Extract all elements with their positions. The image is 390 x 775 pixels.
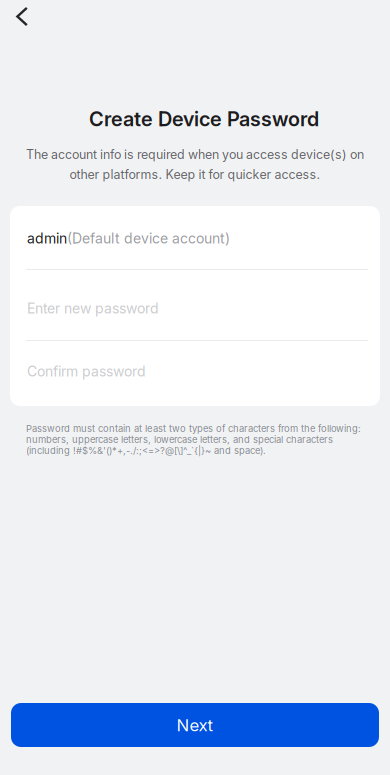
button[interactable]: Enter new password [10, 270, 380, 340]
staticText: Next [176, 715, 213, 735]
staticText: Create Device Password [89, 107, 319, 131]
button[interactable]: Confirm password [10, 341, 380, 406]
button[interactable]: admin [10, 206, 380, 269]
staticText: numbers, uppercase letters, lowercase le… [26, 434, 333, 445]
staticText: Confirm password [27, 363, 146, 380]
staticText: Enter new password [27, 300, 159, 317]
button[interactable]: Back [0, 0, 56, 34]
staticText: (Default device account) [67, 230, 230, 247]
button[interactable]: Next [11, 703, 379, 747]
staticText: The account info is required when you ac… [26, 147, 364, 162]
staticText: admin [27, 230, 67, 247]
staticText: Password must contain at least two types… [26, 423, 361, 434]
staticText: other platforms. Keep it for quicker acc… [69, 167, 320, 182]
staticText: (including !#$%&'()*+,-./:;<=>?@[\]^_`{|… [26, 445, 266, 456]
